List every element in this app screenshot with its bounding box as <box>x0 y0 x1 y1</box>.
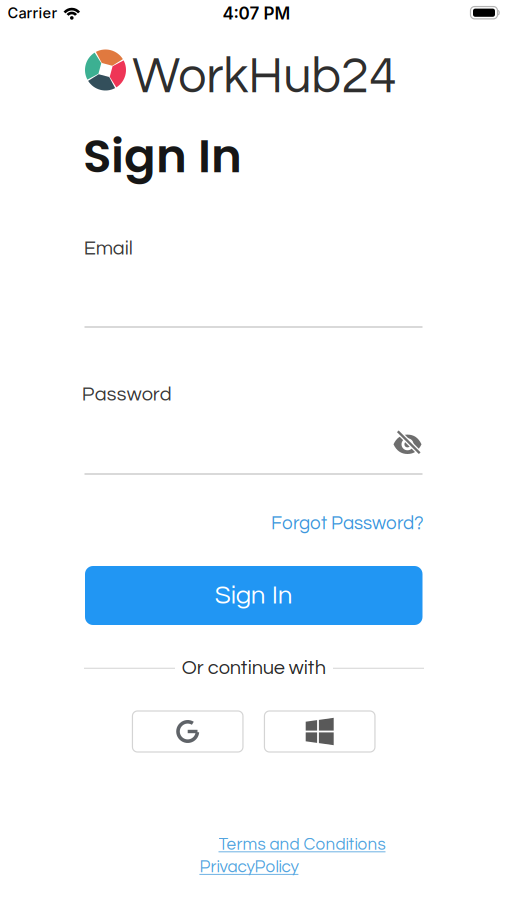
staticText: Forgot Password? <box>271 514 424 533</box>
button[interactable]: Sign in with Google <box>132 711 243 752</box>
staticText: 4:07 PM <box>222 3 290 23</box>
button[interactable]: Sign In <box>85 566 422 625</box>
button[interactable]: Show password <box>386 425 428 463</box>
staticText: WorkHub24 <box>132 51 397 103</box>
button[interactable]: Forgot Password? <box>271 514 424 533</box>
button[interactable]: Terms and Conditions <box>218 836 385 853</box>
staticText: Password <box>82 384 172 405</box>
staticText: Email <box>84 238 133 259</box>
staticText: Sign In <box>215 582 293 609</box>
staticText: Sign In <box>83 123 242 188</box>
button[interactable]: Sign in with Microsoft <box>264 711 375 752</box>
staticText: Or continue with <box>182 658 326 678</box>
button[interactable]: PrivacyPolicy <box>199 858 298 876</box>
staticText: Carrier <box>8 4 58 22</box>
staticText: PrivacyPolicy <box>199 858 298 876</box>
staticText: Terms and Conditions <box>218 836 385 853</box>
